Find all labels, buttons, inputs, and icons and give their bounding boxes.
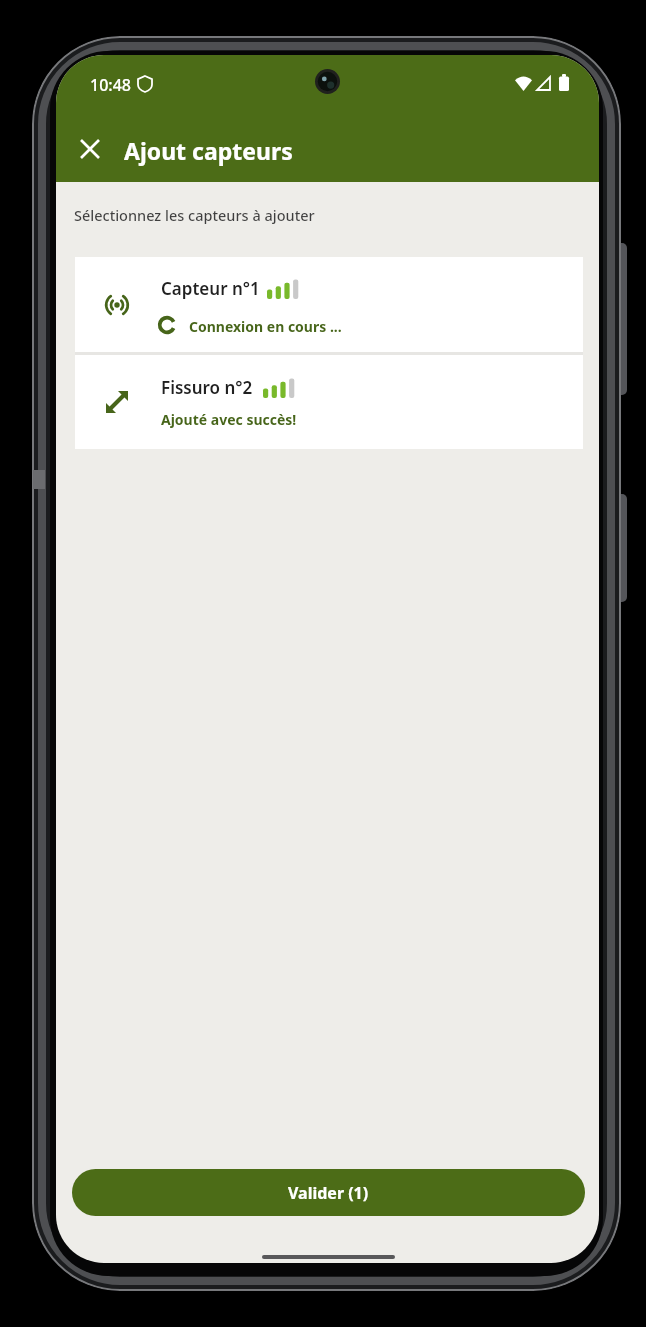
button[interactable]	[70, 129, 110, 169]
staticText: Ajouté avec succès!	[161, 410, 297, 429]
staticText: Valider (1)	[288, 1182, 369, 1204]
staticText: Connexion en cours ...	[189, 317, 342, 336]
button[interactable]: Capteur n°1	[75, 257, 583, 352]
button[interactable]: Fissuro n°2	[75, 355, 583, 449]
staticText: Fissuro n°2	[161, 376, 253, 399]
button[interactable]: Valider (1)	[72, 1169, 585, 1216]
staticText: Capteur n°1	[161, 277, 260, 300]
staticText: Sélectionnez les capteurs à ajouter	[74, 205, 315, 225]
staticText: 10:48	[90, 74, 131, 96]
staticText: Ajout capteurs	[124, 135, 293, 166]
